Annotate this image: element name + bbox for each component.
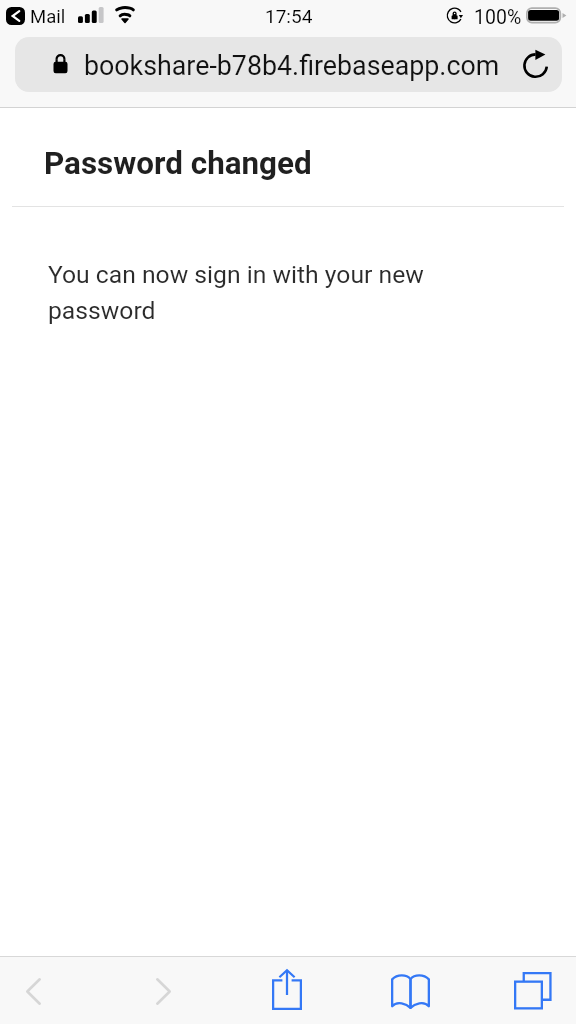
button[interactable]: Forward [115,957,211,1024]
staticText: You can now sign in with your new passwo… [48,260,440,326]
button[interactable]: Back to Mail [6,7,25,25]
staticText: 17:54 [265,5,313,27]
staticText: bookshare-b78b4.firebaseapp.com [84,50,500,81]
button[interactable]: Tabs [480,957,576,1024]
staticText: Mail [30,6,66,28]
button[interactable]: Back [0,957,96,1024]
button[interactable]: bookshare-b78b4.firebaseapp.com [15,37,562,92]
button[interactable]: Bookmarks [362,957,458,1024]
button[interactable]: Share [240,957,336,1024]
button[interactable]: Reload page [515,46,559,84]
staticText: Password changed [44,145,312,182]
staticText: 100% [474,6,522,29]
